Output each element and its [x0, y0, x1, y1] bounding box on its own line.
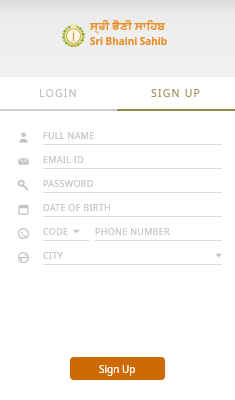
staticText: SIGN UP — [151, 86, 202, 100]
staticText: CITY — [43, 249, 64, 261]
staticText: Sri Bhaini Sahib — [90, 34, 168, 48]
button[interactable]: EMAIL ID — [0, 149, 235, 173]
button[interactable]: PASSWORD — [0, 173, 235, 197]
button[interactable]: LOGIN — [0, 77, 117, 109]
staticText: PHONE NUMBER — [95, 225, 170, 237]
staticText: EMAIL ID — [43, 153, 85, 165]
button[interactable]: CITY — [0, 245, 235, 269]
staticText: FULL NAME — [43, 129, 95, 141]
staticText: DATE OF BIRTH — [43, 201, 111, 213]
button[interactable]: SIGN UP — [117, 77, 235, 109]
staticText: CODE — [43, 225, 69, 237]
button[interactable]: PHONE NUMBER — [95, 225, 222, 241]
button[interactable]: Sign Up — [70, 357, 165, 380]
staticText: ਸ੍ਰੀ ਭੈਣੀ ਸਾਹਿਬ — [90, 18, 165, 34]
button[interactable]: FULL NAME — [0, 125, 235, 149]
button[interactable]: CODE — [43, 225, 89, 241]
staticText: Sign Up — [99, 362, 136, 376]
staticText: PASSWORD — [43, 177, 94, 189]
other: Sri Bhaini Sahib logo — [61, 18, 86, 48]
button[interactable]: DATE OF BIRTH — [0, 197, 235, 221]
staticText: LOGIN — [39, 86, 78, 100]
